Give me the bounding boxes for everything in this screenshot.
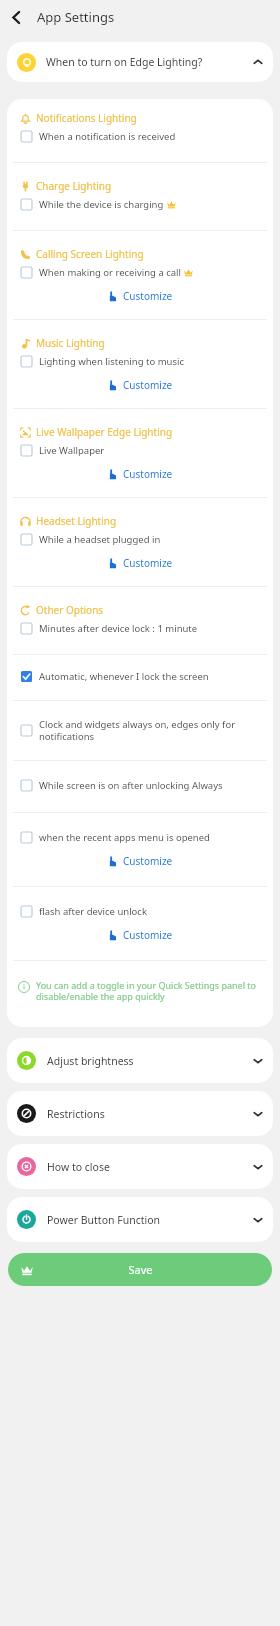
staticText: Lighting when listening to music	[39, 355, 184, 368]
button[interactable]: Customize	[101, 554, 179, 572]
staticText: How to close	[47, 1160, 110, 1174]
button[interactable]: Save	[8, 1253, 272, 1286]
button[interactable]: Clock and widgets always on, edges only …	[7, 716, 273, 745]
staticText: Charge Lighting	[36, 179, 112, 193]
staticText: Other Options	[36, 603, 104, 617]
button[interactable]: Adjust brightness	[7, 1038, 273, 1083]
button[interactable]: Lighting when listening to music	[7, 353, 273, 370]
staticText: Restrictions	[47, 1107, 105, 1121]
staticText: Customize	[123, 556, 173, 570]
staticText: when the recent apps menu is opened	[39, 831, 210, 844]
staticText: While screen is on after unlocking Alway…	[39, 779, 223, 792]
staticText: Power Button Function	[47, 1213, 161, 1227]
button[interactable]: While a headset plugged in	[7, 531, 273, 548]
staticText: Customize	[123, 378, 173, 392]
button[interactable]: Restrictions	[7, 1091, 273, 1136]
staticText: Customize	[123, 467, 173, 481]
button[interactable]: When a notification is received	[7, 128, 273, 145]
staticText: Customize	[123, 928, 173, 942]
button[interactable]: Back	[0, 1, 32, 33]
button[interactable]: Customize	[101, 465, 179, 483]
staticText: Music Lighting	[36, 336, 105, 350]
staticText: App Settings	[37, 8, 115, 26]
staticText: Notifications Lighting	[36, 111, 137, 125]
staticText: Live Wallpaper	[39, 444, 105, 457]
staticText: Headset Lighting	[36, 514, 117, 528]
staticText: While the device is charging	[39, 198, 164, 211]
staticText: Minutes after device lock : 1 minute	[39, 622, 198, 635]
staticText: Customize	[123, 289, 173, 303]
staticText: While a headset plugged in	[39, 533, 161, 546]
button[interactable]: Customize	[101, 376, 179, 394]
button[interactable]: flash after device unlock	[7, 903, 273, 920]
staticText: You can add a toggle in your Quick Setti…	[36, 979, 257, 1003]
staticText: flash after device unlock	[39, 905, 147, 918]
button[interactable]: When to turn on Edge Lighting?	[7, 42, 273, 82]
staticText: Adjust brightness	[47, 1054, 134, 1068]
button[interactable]: How to close	[7, 1144, 273, 1189]
staticText: Automatic, whenever I lock the screen	[39, 670, 209, 683]
button[interactable]: Automatic, whenever I lock the screen	[7, 668, 273, 685]
button[interactable]: Customize	[101, 852, 179, 870]
staticText: Calling Screen Lighting	[36, 247, 144, 261]
staticText: When to turn on Edge Lighting?	[46, 55, 203, 69]
staticText: When making or receiving a call	[39, 266, 181, 279]
staticText: Customize	[123, 854, 173, 868]
staticText: Clock and widgets always on, edges only …	[39, 718, 259, 743]
button[interactable]: Power Button Function	[7, 1197, 273, 1242]
button[interactable]: Minutes after device lock : 1 minute	[7, 620, 273, 637]
button[interactable]: Customize	[101, 287, 179, 305]
button[interactable]: While the device is charging	[7, 196, 273, 213]
button[interactable]: While screen is on after unlocking Alway…	[7, 777, 273, 794]
button[interactable]: Live Wallpaper	[7, 442, 273, 459]
staticText: Save	[128, 1262, 153, 1277]
staticText: When a notification is received	[39, 130, 176, 143]
button[interactable]: When making or receiving a call	[7, 264, 273, 281]
button[interactable]: when the recent apps menu is opened	[7, 829, 273, 846]
button[interactable]: Customize	[101, 926, 179, 944]
staticText: Live Wallpaper Edge Lighting	[36, 425, 173, 439]
